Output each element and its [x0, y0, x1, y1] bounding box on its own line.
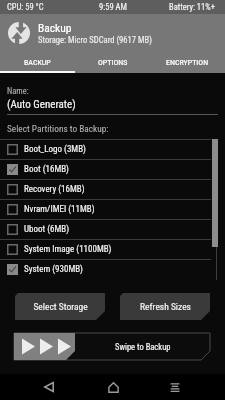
- button[interactable]: Boot (16MB): [0, 160, 211, 179]
- button[interactable]: Back: [34, 374, 64, 400]
- staticText: System Image (1100MB): [24, 244, 112, 255]
- button[interactable]: Uboot (6MB): [0, 220, 211, 239]
- staticText: Swipe to Backup: [115, 342, 171, 352]
- button[interactable]: Home: [98, 374, 128, 400]
- button[interactable]: OPTIONS: [75, 51, 150, 73]
- staticText: 9:59 AM: [99, 2, 127, 12]
- staticText: Select Partitions to Backup:: [7, 123, 109, 134]
- button[interactable]: System (930MB): [0, 260, 211, 279]
- staticText: (Auto Generate): [7, 98, 76, 111]
- button[interactable]: Select Storage: [15, 293, 105, 320]
- staticText: Backup: [38, 21, 72, 34]
- staticText: Storage: Micro SDCard (9617 MB): [38, 35, 152, 45]
- staticText: Boot_Logo (3MB): [24, 144, 86, 155]
- button[interactable]: Boot_Logo (3MB): [0, 140, 211, 159]
- staticText: Boot (16MB): [24, 164, 69, 175]
- staticText: Refresh Sizes: [140, 301, 191, 312]
- staticText: BACKUP: [24, 58, 51, 67]
- button[interactable]: ENCRYPTION: [150, 51, 225, 73]
- button[interactable]: Recovery (16MB): [0, 180, 211, 199]
- staticText: CPU: 59 °C: [7, 2, 44, 12]
- staticText: Battery: 11%+: [169, 2, 215, 12]
- staticText: ENCRYPTION: [166, 58, 209, 67]
- button[interactable]: Swipe to Backup: [0, 333, 225, 360]
- staticText: Uboot (6MB): [24, 224, 70, 235]
- staticText: Select Storage: [33, 301, 88, 312]
- button[interactable]: BACKUP: [0, 51, 75, 73]
- staticText: Nvram/IMEI (11MB): [24, 204, 95, 215]
- staticText: OPTIONS: [98, 58, 128, 67]
- staticText: System (930MB): [24, 264, 83, 275]
- button[interactable]: Refresh Sizes: [120, 293, 210, 320]
- staticText: Name:: [7, 86, 29, 96]
- staticText: Recovery (16MB): [24, 184, 85, 195]
- button[interactable]: Recent apps: [160, 374, 190, 400]
- button[interactable]: Backup: [0, 14, 225, 51]
- button[interactable]: Nvram/IMEI (11MB): [0, 200, 211, 219]
- button[interactable]: System Image (1100MB): [0, 240, 211, 259]
